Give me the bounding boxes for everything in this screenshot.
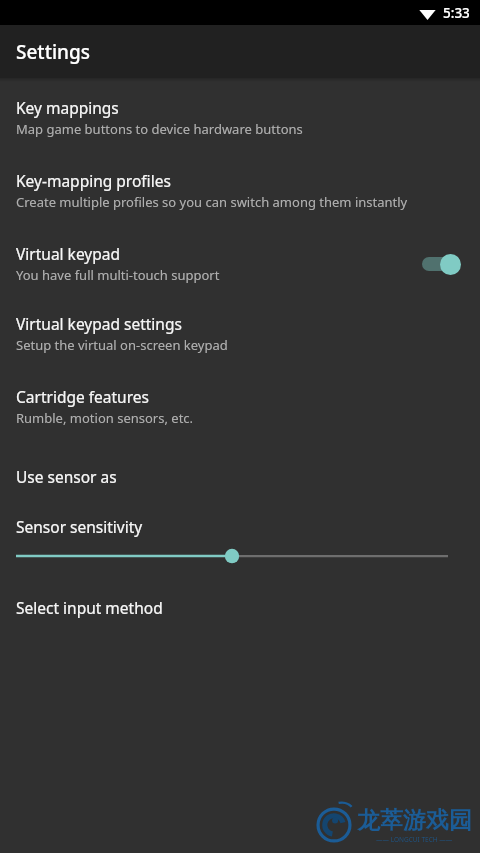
button[interactable]: Virtual keypad settings	[0, 313, 480, 354]
button[interactable]: Sensor sensitivity slider	[0, 537, 480, 571]
button[interactable]: Cartridge features	[0, 386, 480, 427]
button[interactable]: Key mappings	[0, 97, 480, 138]
staticText: 龙萃游戏园	[357, 806, 472, 835]
staticText: Use sensor as	[16, 466, 117, 487]
staticText: You have full multi-touch support	[16, 266, 220, 284]
staticText: Key mappings	[16, 97, 119, 118]
staticText: Rumble, motion sensors, etc.	[16, 409, 194, 427]
staticText: —— LONGCUI TECH ——	[376, 835, 453, 844]
staticText: Setup the virtual on-screen keypad	[16, 336, 228, 354]
button[interactable]: Select input method	[0, 597, 480, 618]
staticText: Key-mapping profiles	[16, 170, 171, 191]
button[interactable]: Virtual keypad	[0, 243, 480, 284]
staticText: Select input method	[16, 597, 163, 618]
staticText: Create multiple profiles so you can swit…	[16, 193, 408, 211]
staticText: Settings	[16, 39, 90, 65]
button[interactable]: Sensor sensitivity	[0, 516, 480, 537]
staticText: 5:33	[443, 4, 470, 22]
staticText: Virtual keypad settings	[16, 313, 182, 334]
staticText: Sensor sensitivity	[16, 516, 143, 537]
staticText: Virtual keypad	[16, 243, 120, 264]
button[interactable]: Virtual keypad toggle	[418, 251, 464, 277]
other: Wi-Fi	[419, 7, 436, 20]
button[interactable]: Key-mapping profiles	[0, 170, 480, 211]
button[interactable]: Use sensor as	[0, 466, 480, 487]
staticText: Cartridge features	[16, 386, 149, 407]
staticText: Map game buttons to device hardware butt…	[16, 120, 303, 138]
